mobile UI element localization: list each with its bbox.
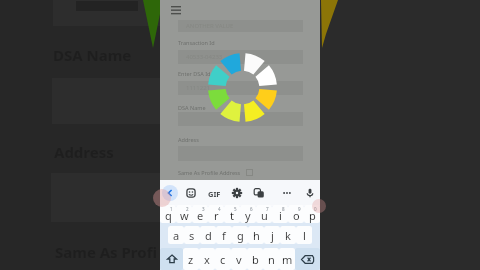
staticText: i xyxy=(279,208,282,223)
button[interactable]: s xyxy=(184,226,200,244)
button[interactable]: Shift xyxy=(160,248,183,270)
button[interactable]: 0 xyxy=(304,205,320,223)
staticText: k xyxy=(285,228,291,243)
staticText: r xyxy=(214,208,219,223)
button[interactable]: Back xyxy=(162,185,178,201)
button[interactable]: GIF xyxy=(207,189,222,199)
staticText: Transaction Id xyxy=(178,39,215,46)
staticText: Same As Profi xyxy=(55,242,157,262)
button[interactable]: 8 xyxy=(272,205,288,223)
button[interactable]: n xyxy=(263,248,279,270)
button[interactable]: j xyxy=(264,226,280,244)
button[interactable]: 40533-04233 xyxy=(178,50,303,64)
staticText: w xyxy=(180,208,189,223)
staticText: e xyxy=(197,208,204,223)
staticText: j xyxy=(271,228,274,243)
staticText: 40533-04233 xyxy=(186,53,223,61)
staticText: p xyxy=(309,208,316,223)
staticText: g xyxy=(237,228,244,243)
button[interactable]: Backspace xyxy=(295,248,320,270)
staticText: 3 xyxy=(202,206,205,212)
button[interactable]: 1 xyxy=(160,205,176,223)
staticText: v xyxy=(236,252,242,267)
staticText: 6 xyxy=(250,206,253,212)
button[interactable]: 2 xyxy=(176,205,192,223)
staticText: Same As Profile Address xyxy=(178,169,241,176)
staticText: o xyxy=(293,208,300,223)
staticText: DSA Name xyxy=(178,104,206,111)
button[interactable]: 6 xyxy=(240,205,256,223)
button[interactable]: m xyxy=(279,248,295,270)
staticText: 8 xyxy=(282,206,285,212)
staticText: l xyxy=(303,228,306,243)
staticText: c xyxy=(220,252,226,267)
staticText: Address xyxy=(54,142,114,162)
button[interactable]: f xyxy=(216,226,232,244)
staticText: d xyxy=(205,228,212,243)
staticText: u xyxy=(261,208,268,223)
button[interactable]: h xyxy=(248,226,264,244)
button[interactable]: b xyxy=(247,248,263,270)
button[interactable]: 5 xyxy=(224,205,240,223)
button[interactable]: d xyxy=(200,226,216,244)
staticText: h xyxy=(253,228,260,243)
button[interactable]: v xyxy=(231,248,247,270)
button[interactable]: c xyxy=(215,248,231,270)
button[interactable]: More xyxy=(281,187,293,199)
staticText: b xyxy=(252,252,259,267)
button[interactable]: Menu xyxy=(171,6,181,14)
staticText: 4 xyxy=(218,206,221,212)
staticText: 5 xyxy=(234,206,237,212)
button[interactable]: k xyxy=(280,226,296,244)
staticText: 1111221 xyxy=(186,84,211,92)
staticText: 9 xyxy=(298,206,301,212)
staticText: GIF xyxy=(208,189,221,199)
staticText: a xyxy=(173,228,180,243)
staticText: Enter DSA Id xyxy=(178,70,211,77)
button[interactable]: Translate xyxy=(253,187,265,199)
staticText: 0 xyxy=(314,206,317,212)
button[interactable]: Stickers xyxy=(185,187,197,199)
button[interactable]: 3 xyxy=(192,205,208,223)
staticText: s xyxy=(189,228,195,243)
button[interactable]: x xyxy=(199,248,215,270)
staticText: 7 xyxy=(266,206,269,212)
button[interactable]: Voice input xyxy=(304,187,316,199)
staticText: 2 xyxy=(186,206,189,212)
button[interactable]: g xyxy=(232,226,248,244)
button[interactable]: a xyxy=(168,226,184,244)
button[interactable]: Settings xyxy=(231,187,243,199)
staticText: q xyxy=(165,208,172,223)
button[interactable]: 1111221 xyxy=(178,81,303,95)
button[interactable]: z xyxy=(183,248,199,270)
button[interactable]: l xyxy=(296,226,312,244)
button[interactable]: Same as profile address xyxy=(246,169,253,176)
button[interactable]: 4 xyxy=(208,205,224,223)
staticText: z xyxy=(188,252,194,267)
staticText: y xyxy=(245,208,251,223)
staticText: n xyxy=(268,252,275,267)
staticText: 1 xyxy=(170,206,173,212)
button[interactable]: 7 xyxy=(256,205,272,223)
staticText: x xyxy=(204,252,210,267)
staticText: t xyxy=(230,208,234,223)
staticText: DSA Name xyxy=(53,45,132,65)
button[interactable] xyxy=(178,112,303,126)
staticText: f xyxy=(222,228,226,243)
button[interactable]: 9 xyxy=(288,205,304,223)
staticText: Address xyxy=(178,136,199,143)
staticText: m xyxy=(282,252,293,267)
